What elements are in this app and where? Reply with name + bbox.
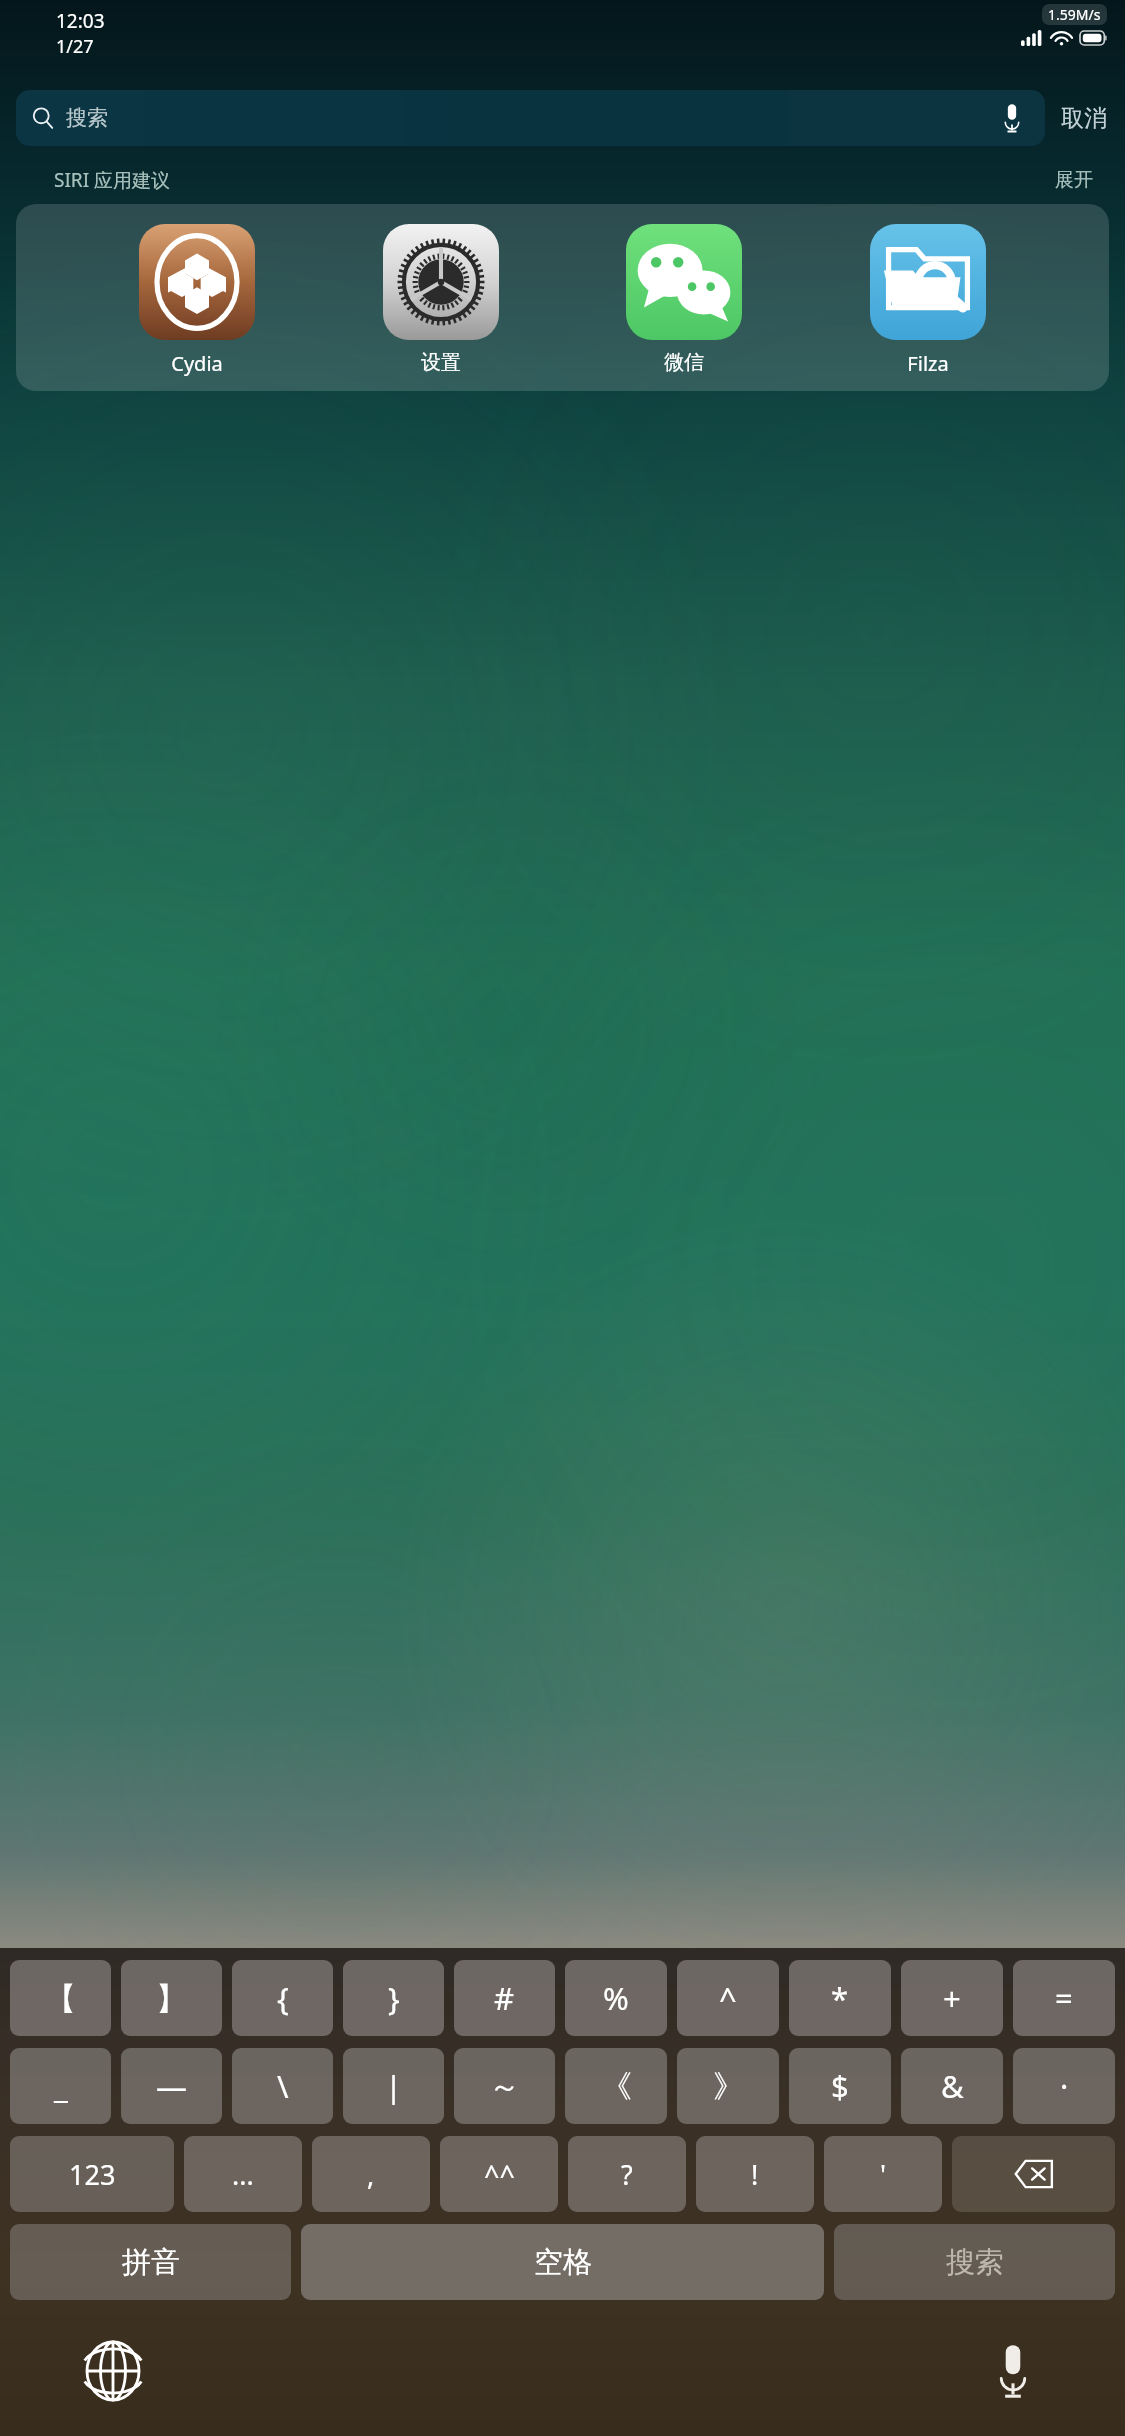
button[interactable]: 设置 [379, 224, 503, 375]
staticText: } [388, 1977, 400, 2019]
button[interactable]: , [312, 2136, 430, 2212]
staticText: + [943, 1977, 961, 2019]
button[interactable]: _ [10, 2048, 111, 2124]
button[interactable]: ! [696, 2136, 814, 2212]
staticText: ! [751, 2156, 759, 2193]
staticText: 设置 [421, 350, 461, 375]
staticText: 微信 [664, 350, 704, 375]
staticText: 1.59M/s [1048, 5, 1101, 24]
button[interactable]: { [232, 1960, 333, 2036]
staticText: ... [232, 2156, 254, 2193]
button[interactable]: 微信 [622, 224, 746, 375]
staticText: ～ [489, 2067, 520, 2106]
staticText: Cydia [171, 350, 223, 377]
button[interactable]: 123 [10, 2136, 174, 2212]
staticText: $ [831, 2065, 849, 2107]
button[interactable]: Change keyboard [0, 2306, 225, 2436]
button[interactable]: \ [232, 2048, 333, 2124]
staticText: & [941, 2065, 964, 2107]
button[interactable]: Dictation [900, 2306, 1125, 2436]
staticText: Filza [907, 350, 949, 377]
staticText: ^^ [484, 2156, 515, 2193]
staticText: = [1055, 1977, 1073, 2019]
button[interactable]: 取消 [1057, 98, 1111, 139]
staticText: ^ [719, 1977, 737, 2019]
button[interactable]: ' [824, 2136, 942, 2212]
staticText: ' [880, 2156, 887, 2193]
button[interactable]: ... [184, 2136, 302, 2212]
button[interactable]: $ [789, 2048, 891, 2124]
staticText: , [367, 2156, 375, 2193]
staticText: — [156, 2065, 187, 2107]
button[interactable]: & [901, 2048, 1003, 2124]
staticText: _ [54, 2065, 68, 2107]
button[interactable]: + [901, 1960, 1003, 2036]
button[interactable]: 【 [10, 1960, 111, 2036]
button[interactable]: ? [568, 2136, 686, 2212]
staticText: { [277, 1977, 289, 2019]
staticText: \ [277, 2065, 289, 2107]
staticText: 12:03 [56, 8, 105, 34]
button[interactable]: ～ [454, 2048, 555, 2124]
button[interactable]: | [343, 2048, 444, 2124]
staticText: 【 [45, 1979, 76, 2018]
button[interactable]: 搜索 [834, 2224, 1115, 2300]
staticText: 123 [69, 2156, 116, 2193]
staticText: 】 [156, 1979, 187, 2018]
button[interactable]: Cydia [135, 224, 259, 377]
staticText: % [603, 1977, 629, 2019]
button[interactable]: 拼音 [10, 2224, 291, 2300]
staticText: 《 [601, 2067, 632, 2106]
button[interactable]: 】 [121, 1960, 222, 2036]
staticText: 》 [713, 2067, 744, 2106]
staticText: 搜索 [946, 2244, 1004, 2281]
button[interactable]: * [789, 1960, 891, 2036]
button[interactable]: · [1013, 2048, 1115, 2124]
staticText: 展开 [1055, 168, 1093, 192]
staticText: # [494, 1977, 515, 2019]
button[interactable]: } [343, 1960, 444, 2036]
button[interactable]: = [1013, 1960, 1115, 2036]
staticText: · [1060, 2065, 1069, 2107]
staticText: SIRI 应用建议 [54, 167, 171, 193]
button[interactable]: 》 [677, 2048, 779, 2124]
button[interactable]: Filza [866, 224, 990, 377]
button[interactable]: ^ [677, 1960, 779, 2036]
button[interactable]: % [565, 1960, 667, 2036]
staticText: * [831, 1977, 849, 2019]
button[interactable]: # [454, 1960, 555, 2036]
staticText: ? [621, 2156, 633, 2193]
staticText: 取消 [1061, 104, 1107, 133]
staticText: 搜索 [66, 105, 108, 131]
button[interactable]: 《 [565, 2048, 667, 2124]
button[interactable]: ^^ [440, 2136, 558, 2212]
button[interactable]: — [121, 2048, 222, 2124]
staticText: 1/27 [56, 34, 94, 59]
staticText: | [385, 2065, 403, 2107]
staticText: 拼音 [122, 2244, 180, 2281]
button[interactable]: 展开 [1051, 164, 1097, 196]
button[interactable]: Delete [952, 2136, 1115, 2212]
button[interactable]: 空格 [301, 2224, 824, 2300]
button[interactable]: 搜索 [16, 90, 1045, 146]
button[interactable]: Voice search [995, 101, 1029, 135]
staticText: 空格 [534, 2244, 592, 2281]
